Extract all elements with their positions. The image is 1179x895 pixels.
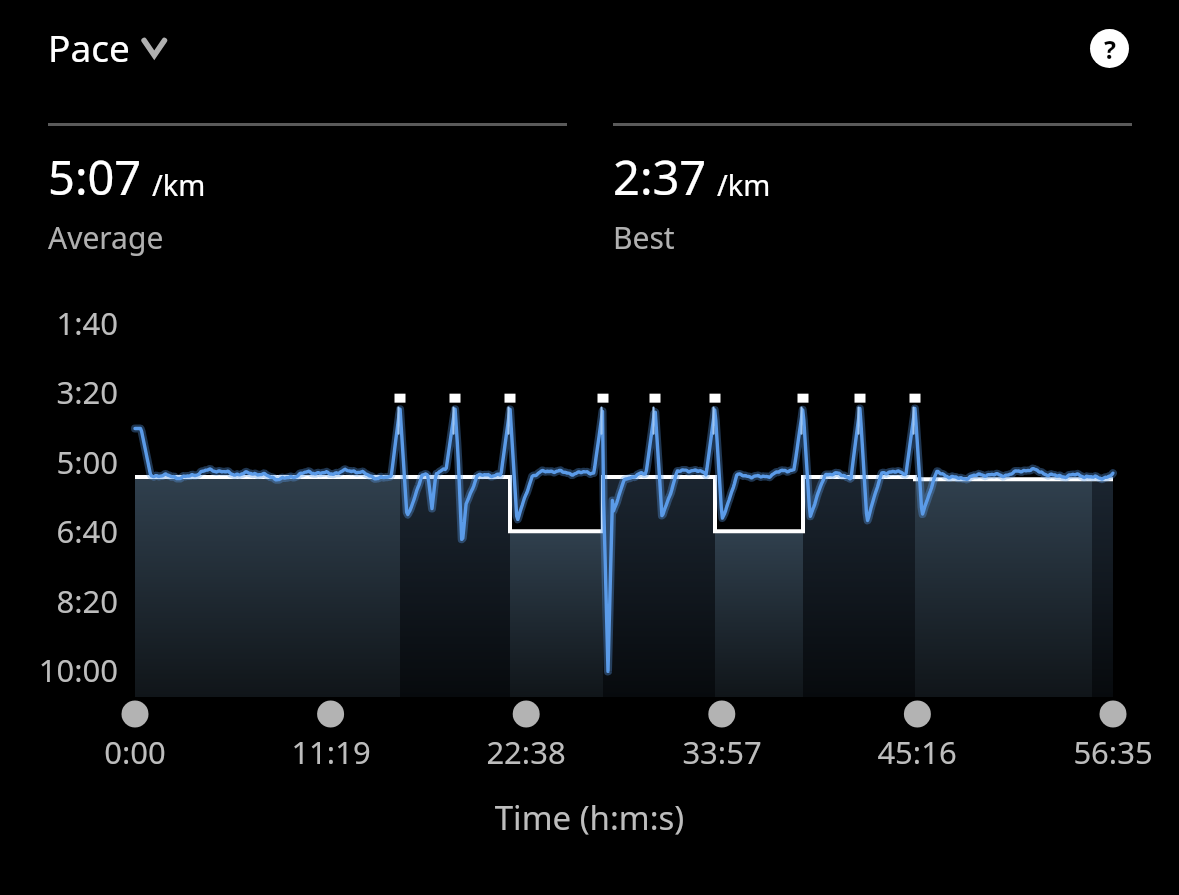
staticText: 5:00 [0,441,118,483]
staticText: 2:37 [613,145,707,209]
button[interactable]: Pace [48,22,182,72]
staticText: Best [613,217,675,258]
staticText: 5:07 [48,145,142,209]
staticText: /km [717,165,771,204]
staticText: Pace [48,22,130,72]
staticText: 56:35 [1023,731,1179,773]
staticText: Time (h:m:s) [0,795,1179,840]
staticText: 33:57 [632,731,812,773]
button[interactable]: Help [1090,29,1129,68]
staticText: 11:19 [241,731,421,773]
staticText: 0:00 [45,731,225,773]
staticText: 8:20 [0,580,118,622]
staticText: 45:16 [827,731,1007,773]
staticText: 3:20 [0,371,118,413]
staticText: Average [48,217,164,258]
staticText: /km [152,165,206,204]
staticText: ? [1104,32,1116,66]
staticText: 10:00 [0,649,118,691]
staticText: 22:38 [436,731,616,773]
staticText: 6:40 [0,510,118,552]
staticText: 1:40 [0,302,118,344]
